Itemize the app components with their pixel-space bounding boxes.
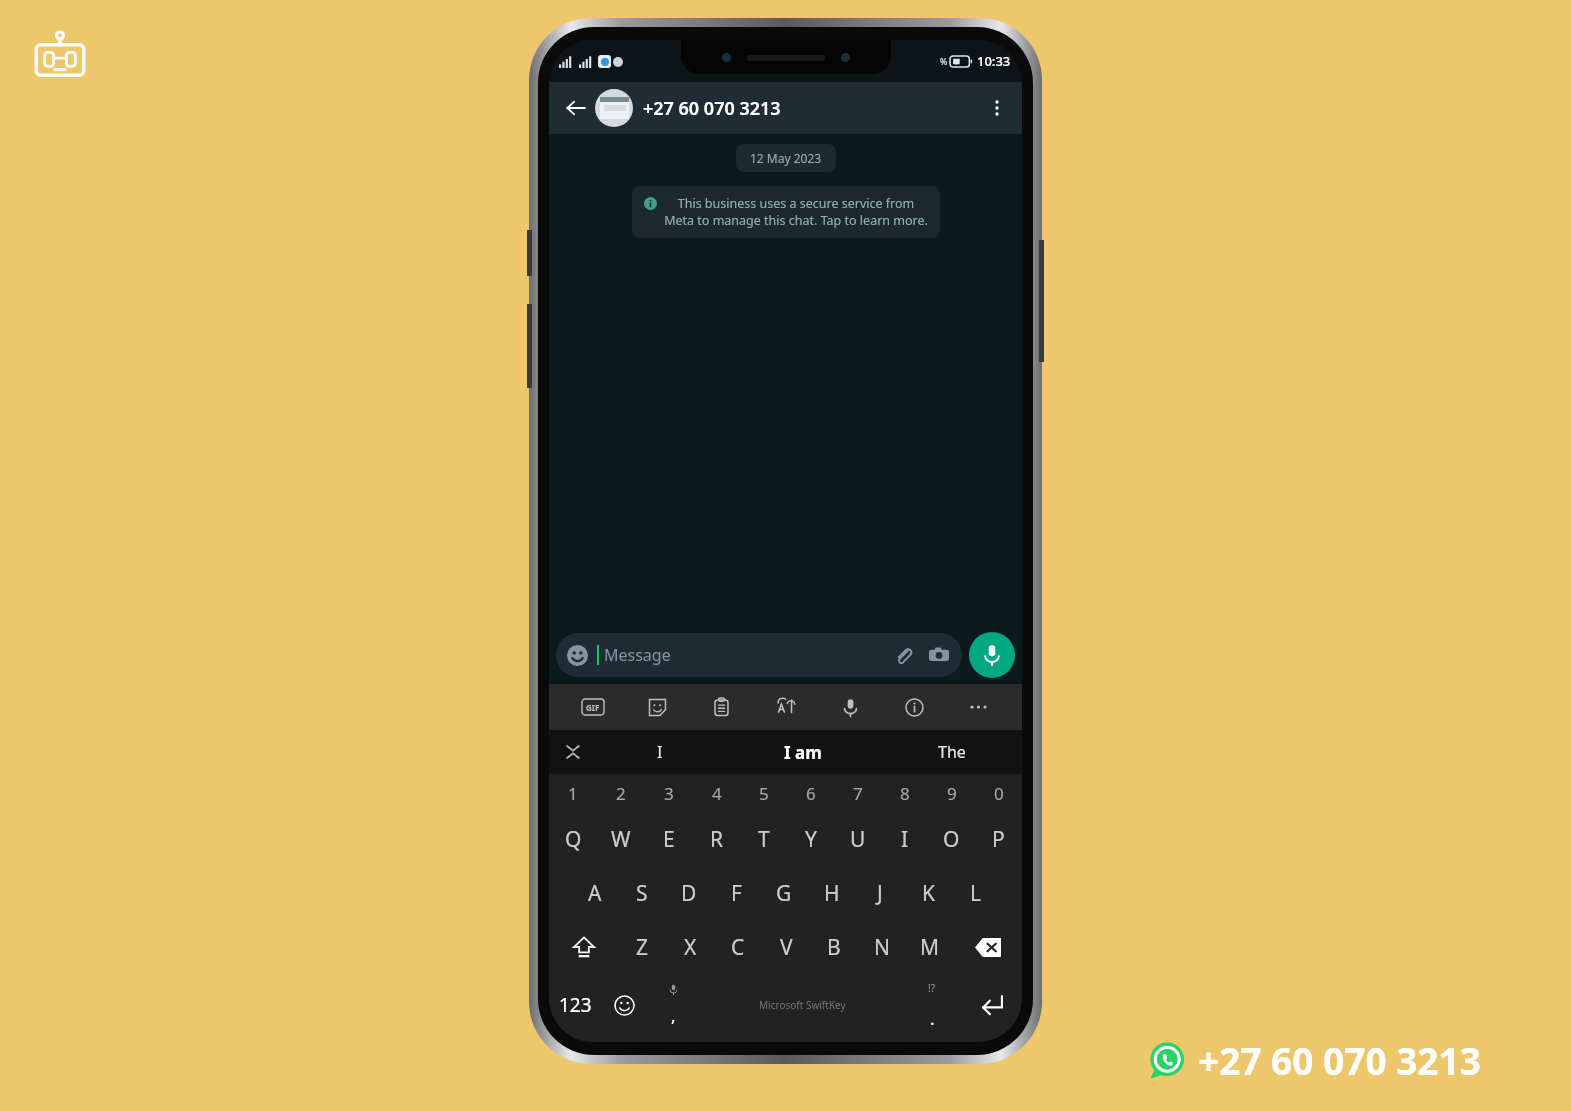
button[interactable]: F [712,866,760,920]
button[interactable]: GIF [573,687,613,727]
staticText: U [850,825,866,854]
staticText: !? [928,981,936,995]
button[interactable]: Y [787,812,834,866]
button[interactable]: Voice message [969,632,1015,678]
staticText: 5 [759,782,769,805]
button[interactable]: V [762,920,810,974]
button[interactable]: S [618,866,665,920]
button[interactable]: More [958,687,998,727]
button[interactable]: Translate [766,687,806,727]
button[interactable]: U [834,812,881,866]
staticText: I [657,741,663,763]
staticText: A [588,879,602,908]
button[interactable]: Shift [549,920,618,974]
button[interactable]: X [666,920,714,974]
staticText: I [901,825,909,854]
button[interactable]: R [693,812,740,866]
button[interactable]: 9 [928,774,975,812]
button[interactable]: A [571,866,618,920]
button[interactable]: Expand [549,730,597,774]
staticText: T [758,825,770,854]
button[interactable]: 12 May 2023 [736,144,836,172]
button[interactable]: Camera [927,643,951,667]
button[interactable]: 8 [881,774,928,812]
button[interactable]: I [597,730,723,774]
button[interactable]: 0 [975,774,1022,812]
button[interactable]: K [904,866,952,920]
staticText: 2 [616,782,626,805]
staticText: O [943,825,960,854]
button[interactable]: D [665,866,712,920]
button[interactable]: Attach [891,643,915,667]
staticText: 3 [664,782,674,805]
button[interactable]: I [881,812,928,866]
staticText: 1 [568,782,578,805]
staticText: Z [636,933,649,962]
button[interactable]: N [858,920,906,974]
button[interactable]: L [952,866,1000,920]
button[interactable]: 2 [597,774,645,812]
button[interactable]: Comma [646,974,700,1036]
button[interactable]: Z [618,920,666,974]
staticText: % [940,55,948,67]
button[interactable]: Enter [959,974,1022,1036]
staticText: Y [805,825,817,854]
staticText: The [938,741,966,763]
staticText: 123 [559,992,592,1018]
staticText: W [611,825,631,854]
staticText: Q [565,825,582,854]
button[interactable]: J [856,866,904,920]
button[interactable]: The [882,730,1022,774]
staticText: L [970,879,982,908]
staticText: 0 [994,782,1004,805]
staticText: I am [784,741,822,764]
staticText: Microsoft SwiftKey [759,998,846,1012]
staticText: S [636,879,648,908]
button[interactable]: More options [980,91,1014,125]
button[interactable]: 6 [787,774,834,812]
button[interactable]: 5 [740,774,787,812]
button[interactable]: P [975,812,1022,866]
other: Logo [28,28,92,92]
button[interactable]: Voice input [830,687,870,727]
button[interactable]: C [714,920,762,974]
button[interactable]: Period [905,974,959,1036]
button[interactable]: Back [557,90,593,126]
button[interactable]: Info [894,687,934,727]
button[interactable]: Stickers [637,687,677,727]
button[interactable]: O [928,812,975,866]
button[interactable]: W [597,812,645,866]
button[interactable]: M [906,920,954,974]
button[interactable]: 123 [549,974,602,1036]
button[interactable]: +27 60 070 3213 [643,96,980,121]
button[interactable]: Emoji keyboard [602,974,646,1036]
staticText: J [877,879,883,908]
staticText: D [681,879,697,908]
staticText: GIF [586,702,600,713]
button[interactable]: Q [549,812,597,866]
button[interactable]: This business uses a secure service from… [632,186,940,238]
staticText: N [874,933,890,962]
staticText: . [930,1007,935,1030]
button[interactable]: 7 [834,774,881,812]
button[interactable]: WhatsApp [1148,1035,1481,1085]
button[interactable]: Space [700,974,905,1036]
other: Emoji [567,645,588,666]
button[interactable]: Clipboard [701,687,741,727]
button[interactable]: 1 [549,774,597,812]
button[interactable]: T [740,812,787,866]
other: WhatsApp [1148,1040,1188,1080]
button[interactable]: B [810,920,858,974]
button[interactable]: G [760,866,808,920]
staticText: P [992,825,1005,854]
button[interactable]: 3 [645,774,693,812]
button[interactable]: Backspace [954,920,1022,974]
button[interactable]: Emoji [556,633,962,677]
button[interactable]: E [645,812,693,866]
button[interactable]: H [808,866,856,920]
button[interactable]: I am [723,730,882,774]
button[interactable]: 4 [693,774,740,812]
button[interactable] [595,89,633,127]
staticText: E [663,825,675,854]
staticText: M [920,933,940,962]
